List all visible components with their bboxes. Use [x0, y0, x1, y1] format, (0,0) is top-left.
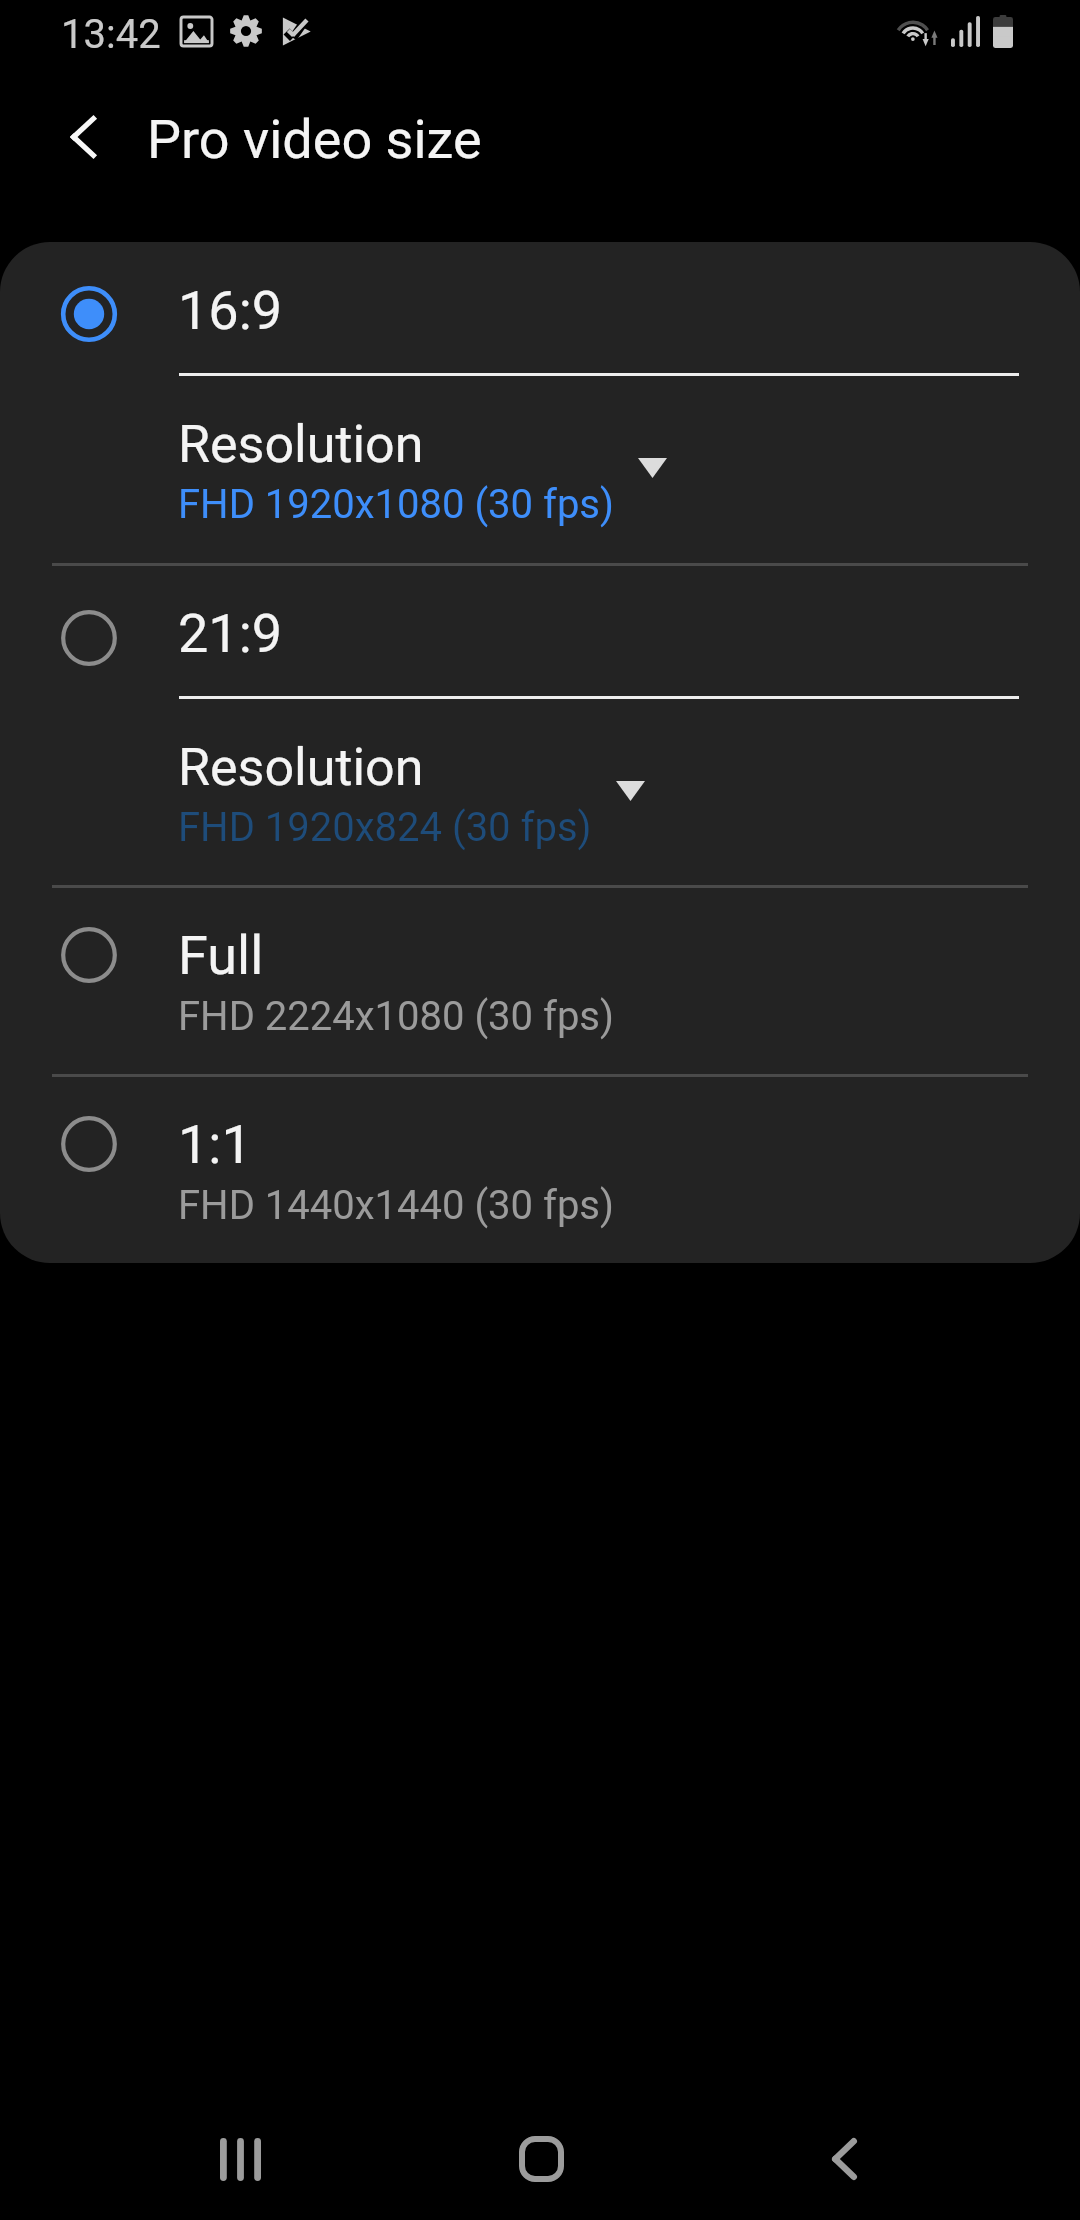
button[interactable]: Navigate up — [27, 81, 139, 193]
button[interactable]: 1:1 — [0, 1077, 1080, 1263]
staticText: FHD 2224x1080 (30 fps) — [178, 993, 614, 1040]
button[interactable]: Resolution — [0, 708, 1080, 885]
staticText: Resolution — [178, 414, 424, 475]
staticText: FHD 1920x824 (30 fps) — [178, 804, 592, 851]
button[interactable]: Back — [734, 2099, 954, 2219]
button[interactable]: Full — [0, 888, 1080, 1074]
button[interactable]: 21:9 — [0, 566, 1080, 708]
staticText: FHD 1920x1080 (30 fps) — [178, 481, 614, 528]
staticText: FHD 1440x1440 (30 fps) — [178, 1182, 614, 1229]
staticText: 1:1 — [178, 1113, 252, 1176]
button[interactable]: Recent apps — [130, 2099, 350, 2219]
staticText: 13:42 — [61, 11, 161, 58]
staticText: 21:9 — [178, 602, 283, 665]
staticText: Full — [178, 924, 264, 987]
staticText: 16:9 — [178, 279, 283, 342]
staticText: Resolution — [178, 737, 424, 798]
staticText: Pro video size — [147, 108, 482, 171]
button[interactable]: Home — [431, 2099, 651, 2219]
button[interactable]: Resolution — [0, 385, 1080, 563]
button[interactable]: 16:9 — [0, 242, 1080, 385]
